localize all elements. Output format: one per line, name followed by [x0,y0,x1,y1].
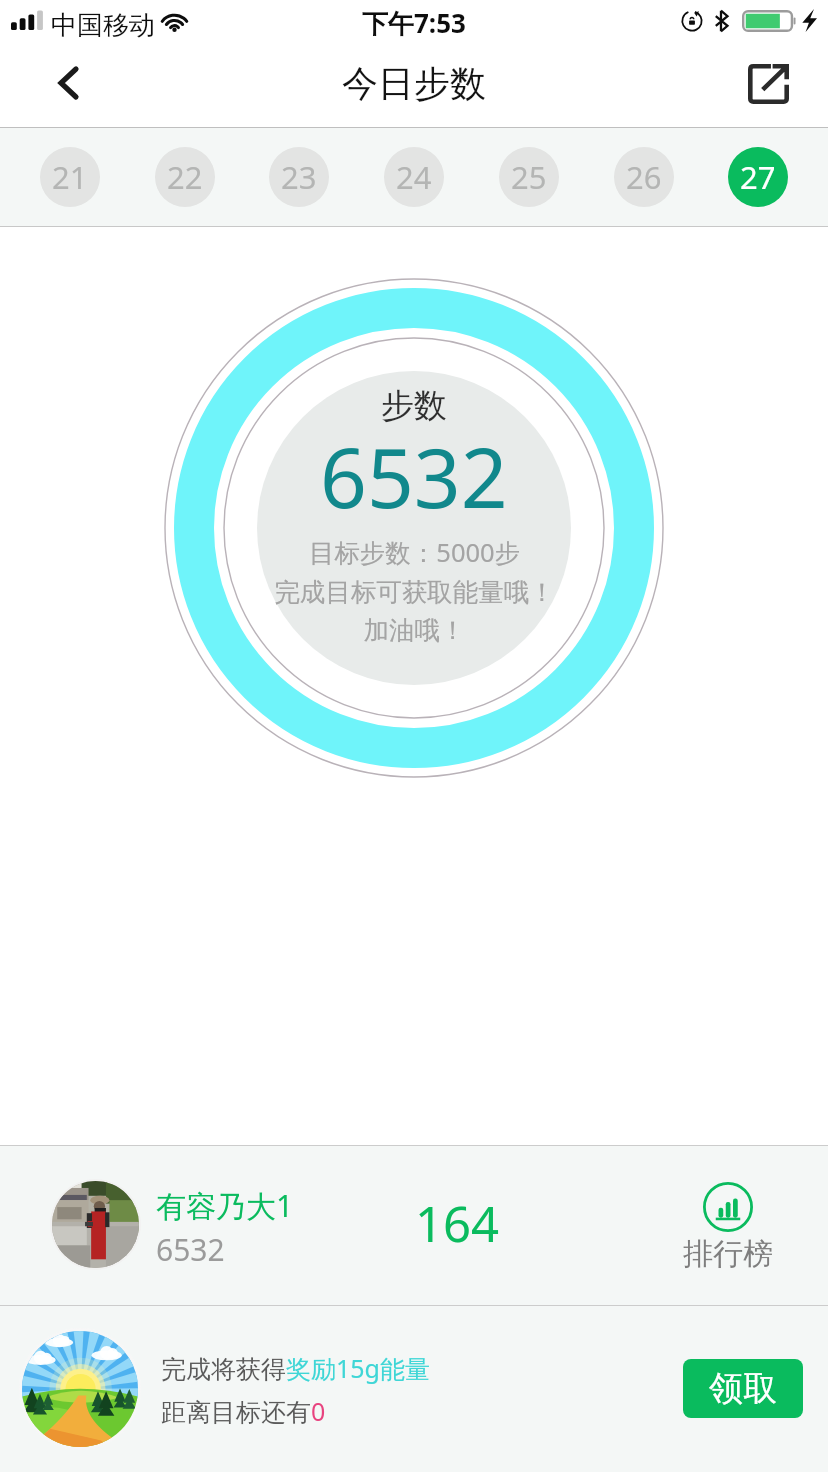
staticText: 22 [167,156,203,198]
staticText: 27 [740,156,776,198]
button[interactable]: 领取 [683,1359,803,1418]
staticText: 距离目标还有0 [161,1394,326,1428]
button[interactable]: 27 [728,147,788,207]
staticText: 领取 [709,1367,777,1410]
button[interactable]: 24 [384,147,444,207]
staticText: 步数 [381,385,447,427]
staticText: 目标步数：5000步 完成目标可获取能量哦！ 加油哦！ [274,535,555,646]
staticText: 164 [415,1190,500,1257]
staticText: 25 [511,156,547,198]
staticText: 6532 [320,420,508,532]
staticText: 24 [396,156,432,198]
staticText: 21 [52,156,88,198]
button[interactable]: 26 [614,147,674,207]
button[interactable]: 25 [499,147,559,207]
staticText: 中国移动 [51,9,155,42]
staticText: 有容乃大1 [156,1185,294,1226]
button[interactable]: Back [22,50,112,128]
button[interactable]: Share [723,50,813,128]
button[interactable]: 21 [40,147,100,207]
staticText: 23 [281,156,317,198]
staticText: 26 [626,156,662,198]
staticText: 6532 [156,1229,225,1270]
button[interactable]: 有容乃大1 [0,1146,828,1305]
button[interactable]: 23 [269,147,329,207]
button[interactable]: 22 [155,147,215,207]
staticText: 完成将获得奖励15g能量 [161,1351,430,1385]
button[interactable]: 排行榜 [668,1182,788,1273]
staticText: 今日步数 [342,61,486,106]
staticText: 排行榜 [683,1235,773,1273]
staticText: 下午7:53 [362,5,466,41]
